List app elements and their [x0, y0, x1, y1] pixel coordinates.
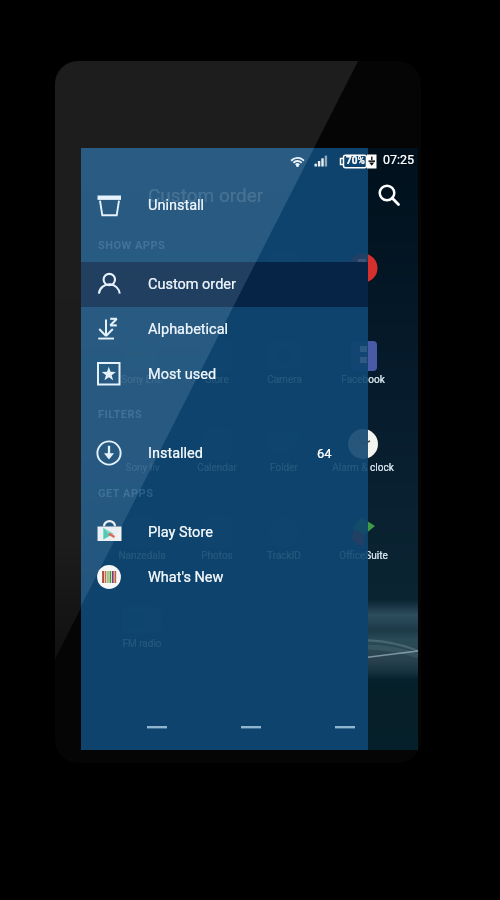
- staticText: Photos: [201, 550, 233, 562]
- staticText: Store: [205, 374, 229, 386]
- staticText: FM radio: [122, 638, 162, 650]
- button[interactable]: Play Store: [81, 510, 368, 555]
- staticText: Uninstall: [148, 197, 205, 214]
- staticText: Calendar: [197, 462, 237, 474]
- staticText: Nanzedala: [118, 550, 166, 562]
- button[interactable]: Custom order: [81, 262, 368, 307]
- staticText: Most used: [148, 366, 217, 383]
- staticText: Camera: [267, 374, 302, 386]
- staticText: Installed: [148, 445, 203, 462]
- staticText: Photos: [201, 550, 233, 562]
- staticText: FILTERS: [98, 408, 143, 421]
- button[interactable]: Uninstall: [81, 183, 368, 228]
- button[interactable]: Alphabetical: [81, 307, 368, 352]
- staticText: SHOW APPS: [98, 239, 166, 252]
- staticText: Calendar: [197, 462, 237, 474]
- staticText: 07:25: [383, 152, 415, 167]
- staticText: Sony Ent.: [121, 374, 163, 386]
- staticText: What's New: [148, 569, 224, 586]
- staticText: Nanzedala: [118, 550, 166, 562]
- staticText: Facebook: [341, 374, 385, 386]
- staticText: Sony liv: [125, 462, 160, 474]
- staticText: OfficeSuite: [339, 550, 388, 562]
- button[interactable]: Search: [372, 179, 406, 213]
- staticText: GET APPS: [98, 487, 154, 500]
- staticText: Sony Ent.: [121, 374, 163, 386]
- staticText: Custom order: [148, 184, 264, 206]
- staticText: Alarm & clock: [332, 462, 394, 474]
- button[interactable]: Installed: [81, 431, 368, 476]
- button[interactable]: Most used: [81, 352, 368, 397]
- staticText: Custom order: [148, 276, 236, 293]
- staticText: Play Store: [195, 286, 240, 298]
- staticText: 64: [317, 446, 332, 461]
- staticText: Sony liv: [125, 462, 160, 474]
- staticText: Sony Ent.: [121, 286, 163, 298]
- staticText: TrackID: [267, 550, 301, 562]
- staticText: Alphabetical: [148, 321, 229, 338]
- staticText: Play Store: [148, 524, 213, 541]
- staticText: Facebook: [341, 374, 385, 386]
- staticText: OfficeSuite: [339, 550, 388, 562]
- staticText: Camera: [267, 374, 302, 386]
- staticText: Play Store: [195, 286, 240, 298]
- button[interactable]: What's New: [81, 555, 368, 600]
- staticText: Sony Ent.: [121, 286, 163, 298]
- staticText: 70%: [346, 155, 365, 167]
- staticText: Alarm & clock: [332, 462, 394, 474]
- staticText: FM radio: [122, 638, 162, 650]
- staticText: Folder: [270, 462, 298, 474]
- staticText: Folder: [270, 462, 298, 474]
- staticText: Store: [205, 374, 229, 386]
- staticText: TrackID: [267, 550, 301, 562]
- staticText: Custom order: [148, 184, 264, 206]
